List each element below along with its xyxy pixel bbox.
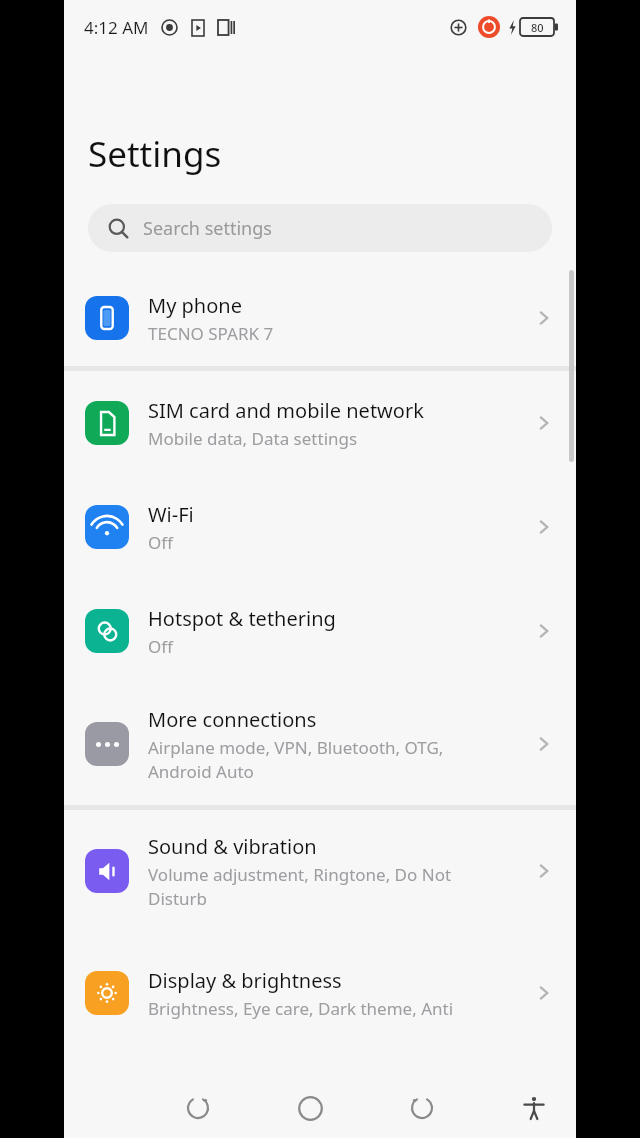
staticText: Wi-Fi — [148, 501, 194, 528]
staticText: 80 — [531, 20, 544, 35]
button[interactable]: Wi-Fi — [64, 475, 576, 579]
button[interactable]: More connections — [64, 683, 576, 805]
staticText: SIM card and mobile network — [148, 397, 424, 424]
staticText: Display & brightness — [148, 967, 342, 994]
staticText: Hotspot & tethering — [148, 605, 336, 632]
button[interactable]: Display & brightness — [64, 932, 576, 1054]
button[interactable]: My phone — [64, 270, 576, 366]
button[interactable]: Back — [396, 1082, 448, 1134]
staticText: Volume adjustment, Ringtone, Do Not Dist… — [148, 863, 452, 910]
staticText: Brightness, Eye care, Dark theme, Anti — [148, 997, 454, 1020]
staticText: Sound & vibration — [148, 833, 317, 860]
button[interactable]: Sound & vibration — [64, 810, 576, 932]
button[interactable]: Accessibility — [508, 1082, 560, 1134]
staticText: Search settings — [143, 216, 272, 241]
staticText: Airplane mode, VPN, Bluetooth, OTG, Andr… — [148, 736, 444, 783]
button[interactable]: Search settings — [88, 204, 552, 252]
staticText: Off — [148, 531, 173, 554]
button[interactable]: Hotspot & tethering — [64, 579, 576, 683]
button[interactable]: Home — [284, 1082, 336, 1134]
button[interactable]: Recent apps — [172, 1082, 224, 1134]
staticText: Mobile data, Data settings — [148, 427, 358, 450]
staticText: My phone — [148, 292, 242, 319]
staticText: TECNO SPARK 7 — [148, 322, 274, 345]
staticText: More connections — [148, 706, 317, 733]
staticText: Off — [148, 635, 173, 658]
staticText: 4:12 AM — [84, 16, 149, 39]
staticText: Settings — [88, 130, 222, 178]
button[interactable]: SIM card and mobile network — [64, 371, 576, 475]
